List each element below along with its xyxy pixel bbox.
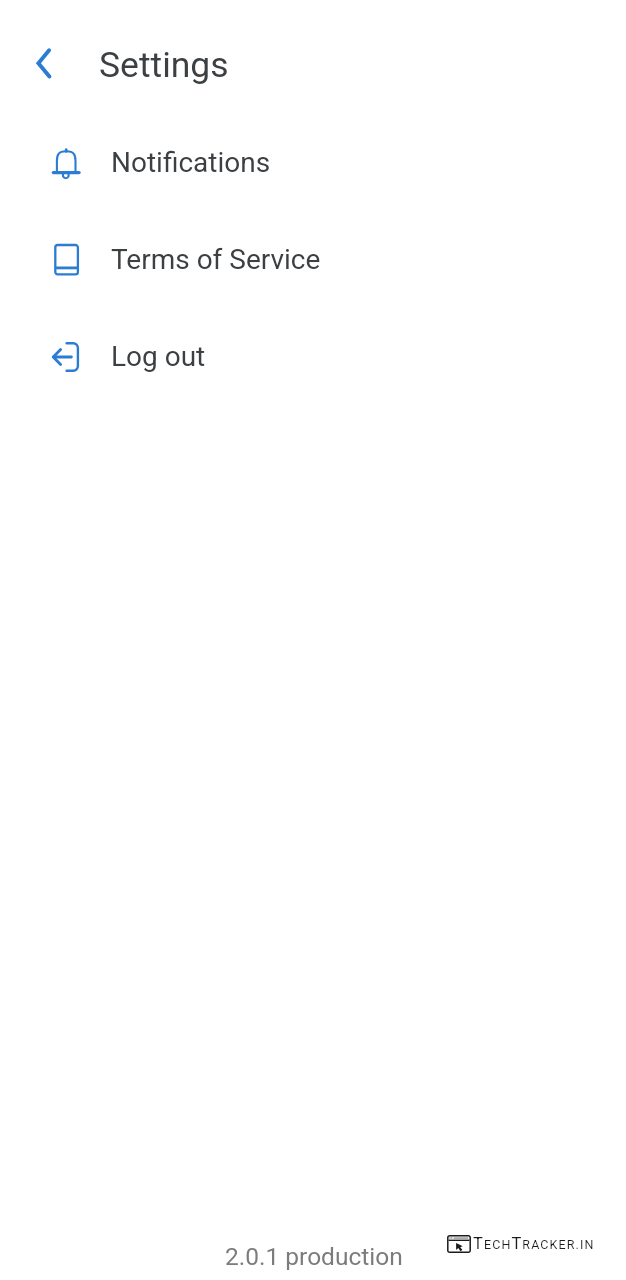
staticText: Terms of Service bbox=[111, 243, 321, 276]
staticText: 2.0.1 production bbox=[225, 1242, 403, 1271]
button[interactable]: Navigate back bbox=[20, 40, 68, 88]
staticText: TECHTRACKER.IN bbox=[473, 1234, 595, 1253]
staticText: Notifications bbox=[111, 146, 271, 179]
staticText: Settings bbox=[99, 44, 229, 86]
button[interactable]: Log out bbox=[0, 308, 626, 405]
button[interactable]: Terms of Service bbox=[0, 211, 626, 308]
staticText: Log out bbox=[111, 340, 206, 373]
button[interactable]: Notifications bbox=[0, 114, 626, 211]
